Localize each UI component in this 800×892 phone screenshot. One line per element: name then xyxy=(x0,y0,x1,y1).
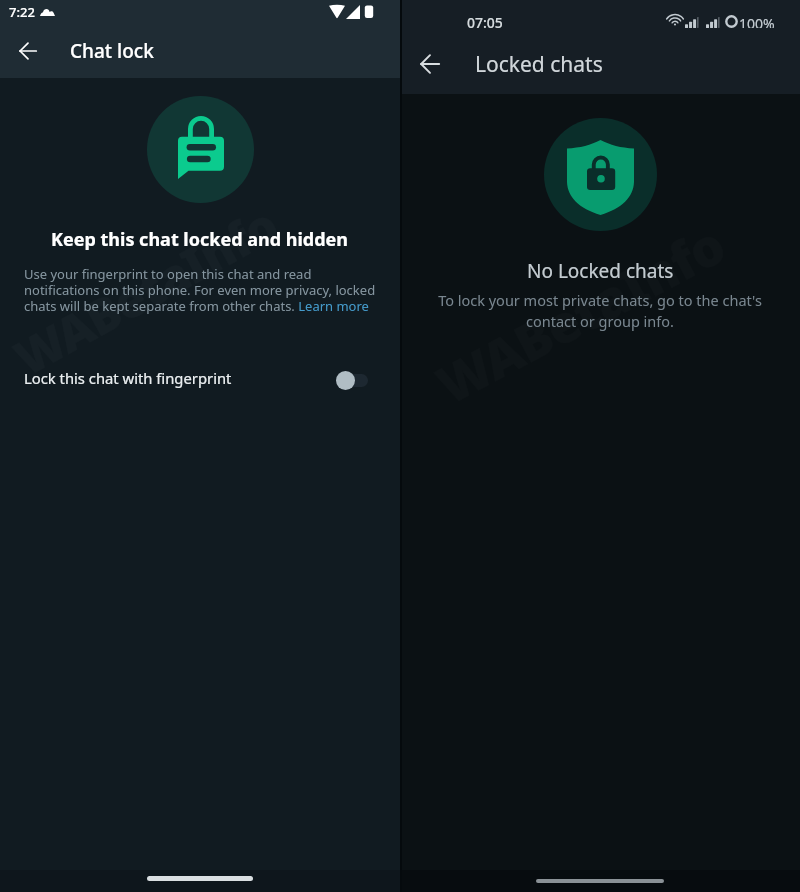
button[interactable]: Lock this chat with fingerprint xyxy=(0,350,400,406)
staticText: Chat lock xyxy=(70,38,154,64)
staticText: Keep this chat locked and hidden xyxy=(51,227,349,252)
staticText: Lock this chat with fingerprint xyxy=(24,368,232,388)
staticText: Use your fingerprint to open this chat a… xyxy=(24,265,376,314)
button[interactable]: Lock this chat with fingerprint toggle xyxy=(336,369,368,391)
button[interactable]: Back xyxy=(6,29,50,73)
staticText: Locked chats xyxy=(475,50,603,79)
button[interactable]: Back xyxy=(408,42,452,86)
staticText: WABetaInfo xyxy=(2,191,288,389)
staticText: 07:05 xyxy=(467,13,503,32)
staticText: WABetaInfo xyxy=(424,208,736,419)
staticText: To lock your most private chats, go to t… xyxy=(432,290,768,332)
staticText: 100% xyxy=(739,14,775,28)
staticText: 7:22 xyxy=(9,3,35,21)
staticText: No Locked chats xyxy=(527,258,674,284)
